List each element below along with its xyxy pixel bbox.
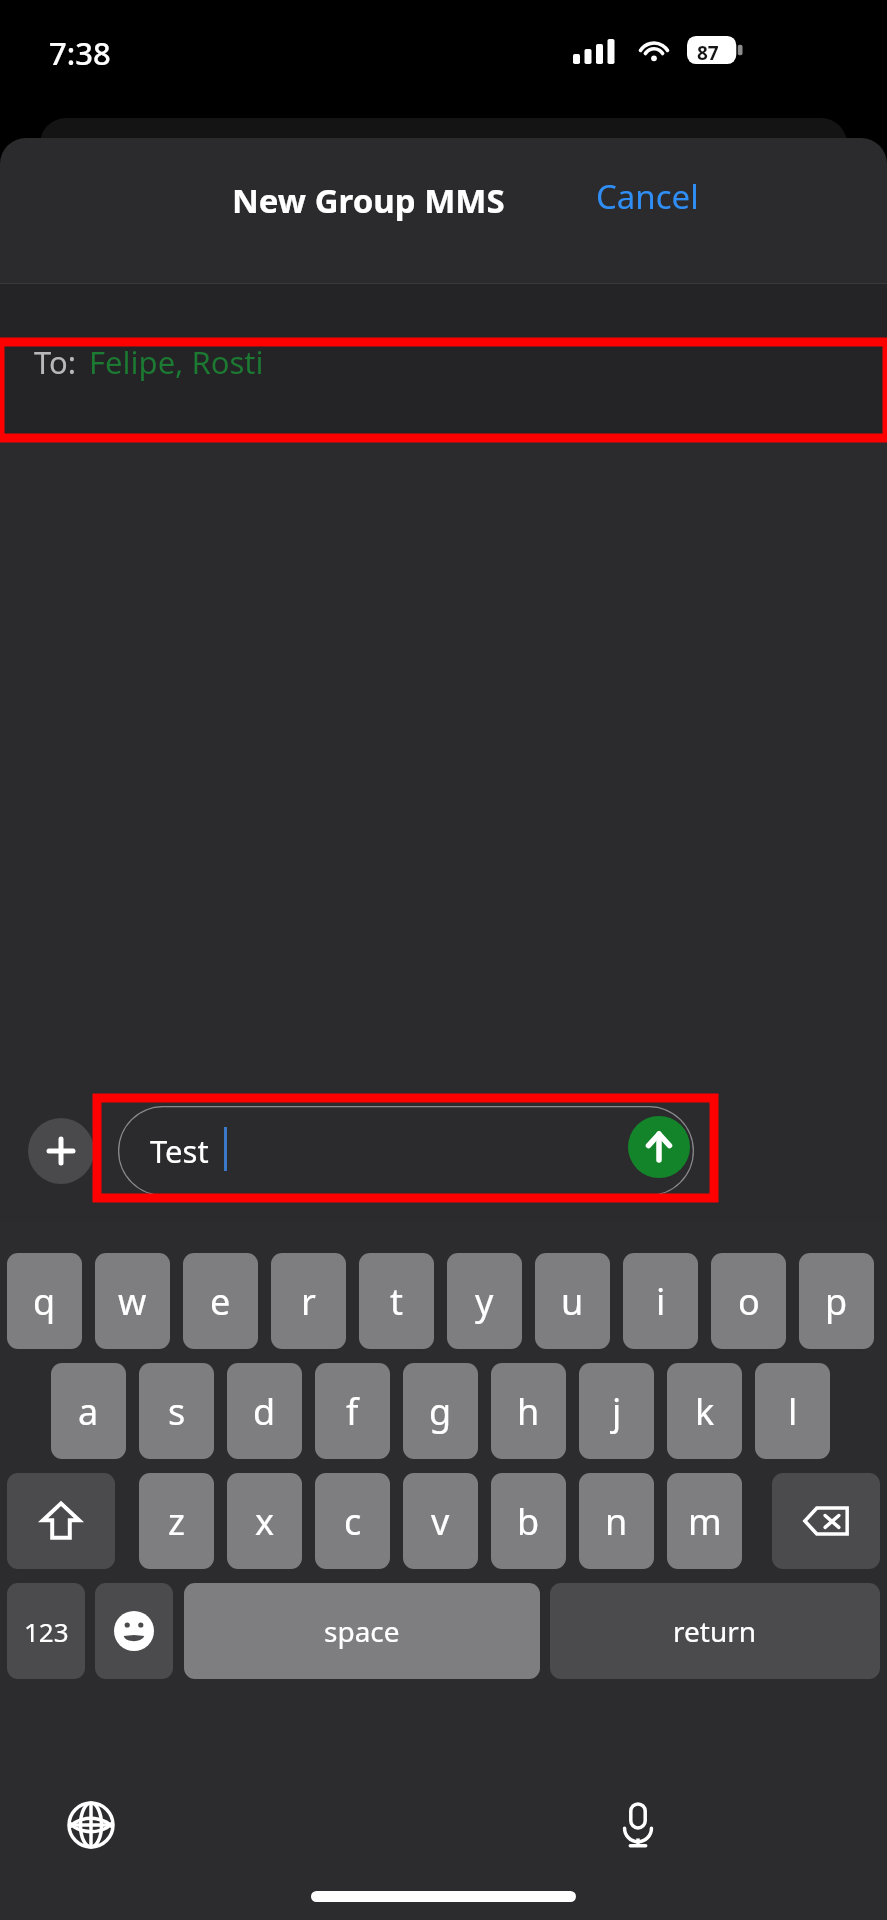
button[interactable]: b [491,1473,566,1569]
button[interactable]: Add attachment [28,1118,94,1184]
staticText: d [253,1387,276,1436]
button[interactable]: y [447,1253,522,1349]
button[interactable]: 123 [7,1583,85,1679]
button[interactable]: j [579,1363,654,1459]
staticText: Felipe, Rosti [89,341,264,383]
staticText: z [168,1497,185,1546]
button[interactable]: Send [628,1116,690,1178]
button[interactable]: Backspace [772,1473,880,1569]
button[interactable]: space [184,1583,540,1679]
button[interactable]: Change keyboard [58,1792,124,1858]
staticText: To: [34,341,77,383]
staticText: w [118,1277,147,1326]
button[interactable]: Test [118,1106,694,1196]
button[interactable]: z [139,1473,214,1569]
button[interactable]: i [623,1253,698,1349]
button[interactable]: To: [0,284,887,439]
staticText: p [825,1277,848,1326]
button[interactable]: p [799,1253,874,1349]
staticText: f [346,1387,359,1436]
button[interactable]: d [227,1363,302,1459]
staticText: m [688,1497,722,1546]
button[interactable]: k [667,1363,742,1459]
button[interactable]: r [271,1253,346,1349]
button[interactable]: n [579,1473,654,1569]
staticText: q [33,1277,56,1326]
staticText: l [788,1387,798,1436]
staticText: j [612,1387,622,1436]
staticText: a [78,1387,99,1436]
button[interactable]: q [7,1253,82,1349]
staticText: r [301,1277,316,1326]
button[interactable]: u [535,1253,610,1349]
staticText: return [673,1612,757,1650]
staticText: i [656,1277,666,1326]
staticText: s [168,1387,186,1436]
button[interactable]: w [95,1253,170,1349]
staticText: 123 [24,1614,69,1649]
staticText: t [390,1277,403,1326]
staticText: 7:38 [49,32,111,74]
staticText: b [517,1497,540,1546]
staticText: c [344,1497,362,1546]
staticText: g [429,1387,452,1436]
staticText: y [475,1277,494,1326]
button[interactable]: Dictation [605,1792,671,1858]
staticText: Cancel [596,174,699,219]
button[interactable]: t [359,1253,434,1349]
staticText: u [561,1277,584,1326]
button[interactable]: s [139,1363,214,1459]
button[interactable]: Cancel [575,166,720,226]
staticText: Test [150,1130,209,1172]
button[interactable]: Shift [7,1473,115,1569]
button[interactable]: g [403,1363,478,1459]
button[interactable]: e [183,1253,258,1349]
staticText: space [324,1612,400,1650]
staticText: n [605,1497,628,1546]
button[interactable]: m [667,1473,742,1569]
staticText: e [210,1277,231,1326]
staticText: k [695,1387,715,1436]
staticText: v [431,1497,450,1546]
staticText: New Group MMS [232,178,505,223]
button[interactable]: o [711,1253,786,1349]
button[interactable]: return [550,1583,880,1679]
button[interactable]: v [403,1473,478,1569]
button[interactable]: a [51,1363,126,1459]
button[interactable]: x [227,1473,302,1569]
button[interactable]: Emoji [95,1583,173,1679]
staticText: o [738,1277,760,1326]
button[interactable]: l [755,1363,830,1459]
staticText: h [517,1387,540,1436]
button[interactable]: c [315,1473,390,1569]
staticText: x [255,1497,275,1546]
button[interactable]: h [491,1363,566,1459]
button[interactable]: f [315,1363,390,1459]
staticText: 87 [697,40,719,66]
